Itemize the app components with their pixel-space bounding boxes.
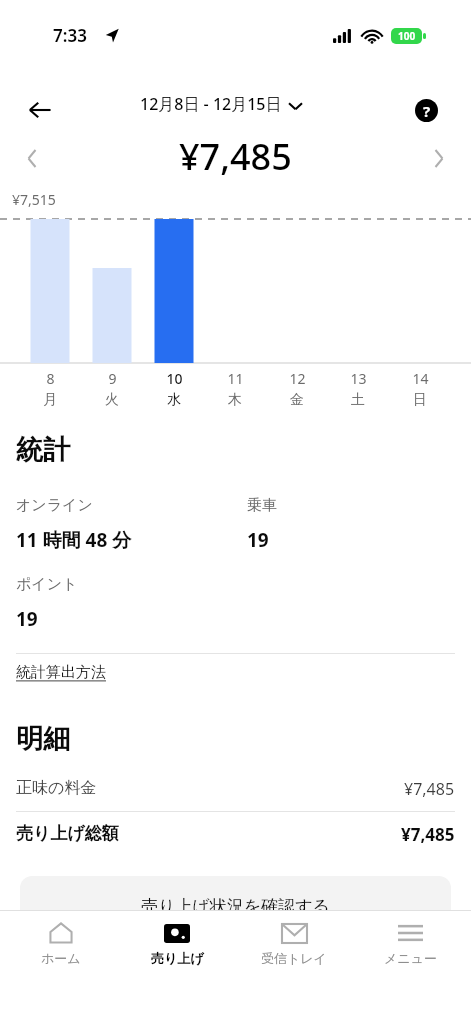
- staticText: 7:33: [53, 24, 87, 47]
- staticText: ¥7,485: [401, 823, 455, 846]
- staticText: 明細: [16, 722, 70, 756]
- staticText: 8: [46, 369, 55, 388]
- staticText: 12月8日 - 12月15日: [140, 93, 282, 115]
- staticText: ポイント: [16, 575, 78, 594]
- staticText: 11 時間 48 分: [16, 527, 132, 553]
- staticText: 統計: [16, 433, 70, 467]
- staticText: 13: [350, 369, 367, 388]
- button[interactable]: ホーム: [6, 911, 116, 966]
- staticText: 乗車: [247, 496, 277, 515]
- button[interactable]: 統計算出方法: [16, 663, 106, 682]
- staticText: ¥7,485: [179, 132, 292, 181]
- staticText: 火: [105, 391, 119, 409]
- staticText: 統計算出方法: [16, 663, 106, 682]
- button[interactable]: 売り上げ: [122, 911, 232, 966]
- button[interactable]: Next week: [417, 136, 461, 180]
- staticText: 売り上げ状況を確認する: [141, 896, 330, 917]
- button[interactable]: メニュー: [355, 911, 465, 966]
- staticText: 水: [167, 391, 181, 409]
- staticText: 9: [108, 369, 117, 388]
- staticText: 土: [351, 391, 365, 409]
- staticText: 月: [43, 391, 57, 409]
- staticText: 受信トレイ: [261, 950, 327, 966]
- button[interactable]: Previous week: [10, 136, 54, 180]
- staticText: 12: [289, 369, 306, 388]
- staticText: 14: [412, 369, 429, 388]
- staticText: 11: [227, 369, 244, 388]
- staticText: ¥7,485: [404, 778, 455, 800]
- staticText: 日: [413, 391, 427, 409]
- button[interactable]: 12月8日 - 12月15日: [140, 93, 302, 115]
- staticText: 売り上げ: [151, 950, 204, 966]
- staticText: ?: [423, 101, 431, 121]
- staticText: 10: [166, 369, 183, 388]
- staticText: オンライン: [16, 496, 93, 515]
- staticText: 正味の料金: [16, 778, 97, 798]
- staticText: 木: [228, 391, 242, 409]
- button[interactable]: Help: [404, 88, 448, 132]
- button[interactable]: 受信トレイ: [239, 911, 349, 966]
- staticText: 19: [16, 606, 38, 632]
- staticText: ¥7,515: [12, 190, 56, 209]
- button[interactable]: Back: [18, 88, 62, 132]
- staticText: 19: [247, 527, 269, 553]
- staticText: 金: [290, 391, 304, 409]
- button[interactable]: 売り上げ状況を確認する: [20, 876, 451, 946]
- staticText: 100: [398, 29, 416, 43]
- staticText: メニュー: [384, 950, 437, 966]
- staticText: 売り上げ総額: [16, 823, 119, 844]
- staticText: ホーム: [41, 950, 81, 966]
